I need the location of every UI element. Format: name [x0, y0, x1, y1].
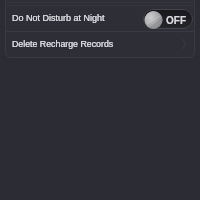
staticText: Do Not Disturb at Night [12, 13, 105, 23]
button[interactable]: Delete Recharge Records [6, 31, 194, 57]
button[interactable]: Do Not Disturb at Night [6, 6, 194, 31]
button[interactable]: Do Not Disturb at Night switch, off [143, 9, 193, 29]
staticText: Delete Recharge Records [12, 39, 114, 49]
staticText: OFF [166, 15, 186, 26]
